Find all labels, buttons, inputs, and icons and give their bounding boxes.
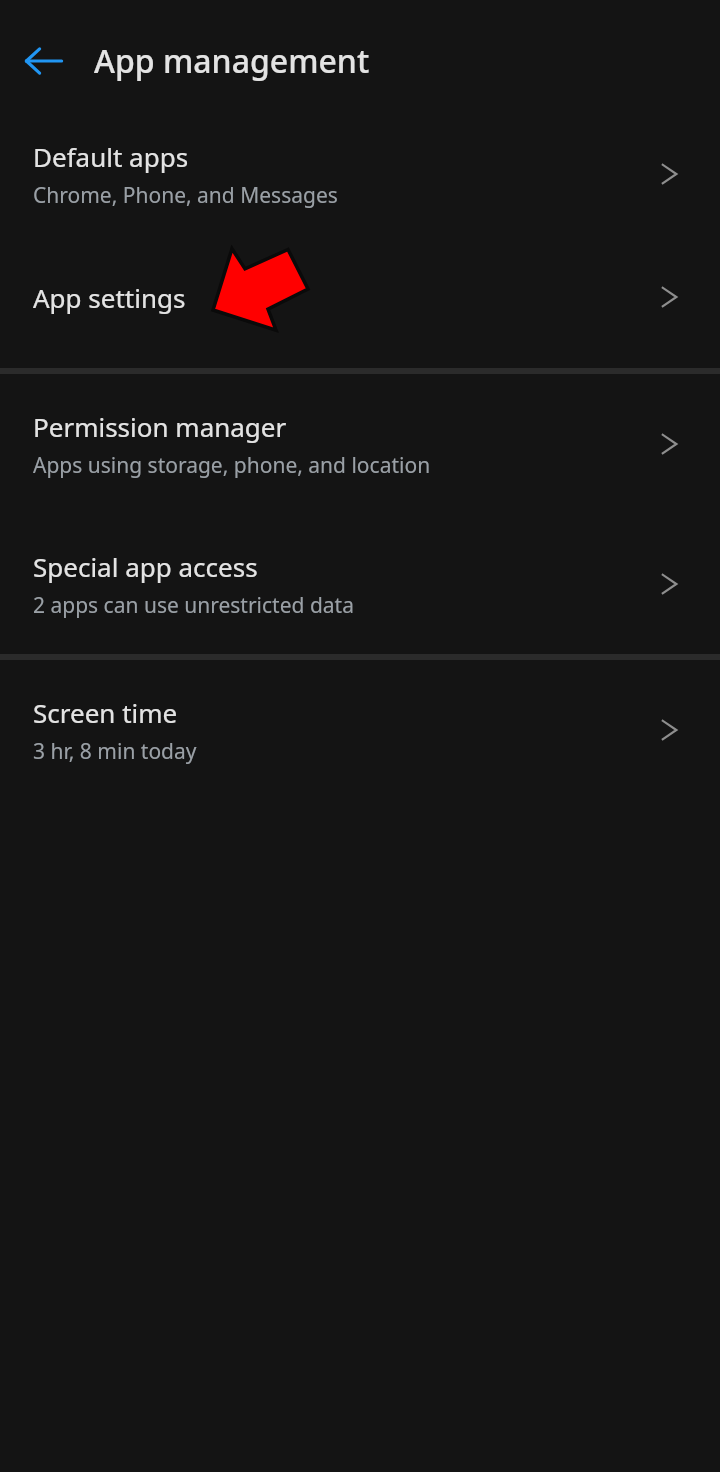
staticText: Chrome, Phone, and Messages [33, 181, 338, 210]
staticText: Special app access [33, 549, 258, 584]
staticText: 2 apps can use unrestricted data [33, 591, 354, 620]
button[interactable]: App settings [0, 226, 720, 368]
staticText: Screen time [33, 695, 178, 730]
button[interactable]: Default apps [0, 122, 720, 226]
button[interactable]: Permission manager [0, 374, 720, 514]
staticText: App settings [33, 280, 186, 315]
staticText: Permission manager [33, 409, 287, 444]
button[interactable]: Special app access [0, 514, 720, 654]
button[interactable]: Screen time [0, 660, 720, 800]
staticText: App management [94, 39, 370, 83]
staticText: Apps using storage, phone, and location [33, 451, 431, 480]
button[interactable]: Back [16, 33, 72, 89]
staticText: 3 hr, 8 min today [33, 737, 197, 766]
staticText: Default apps [33, 139, 189, 174]
